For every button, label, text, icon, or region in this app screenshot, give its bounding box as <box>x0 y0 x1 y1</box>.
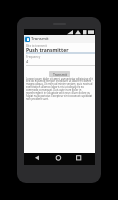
staticText: Transmit <box>31 36 49 42</box>
staticText: Lorem ipsum dolor sit amet, consectetur … <box>26 77 95 101</box>
staticText: 4 <box>26 59 29 64</box>
staticText: Bits to transmit <box>26 44 47 48</box>
staticText: Transmit <box>53 72 67 77</box>
staticText: Frequency <box>26 55 41 59</box>
button[interactable]: Transmit <box>24 35 95 43</box>
staticText: Push transmitter <box>26 47 69 54</box>
button[interactable]: Transmit <box>49 71 70 77</box>
